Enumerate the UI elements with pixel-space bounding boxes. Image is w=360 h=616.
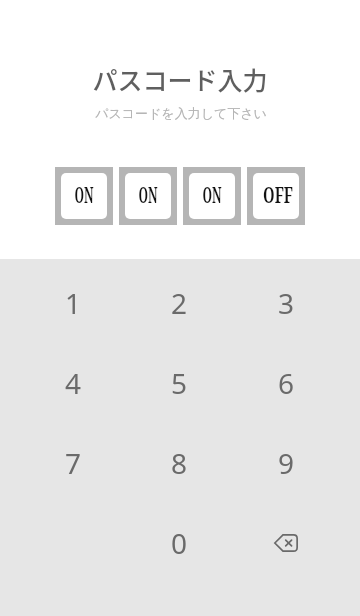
- button[interactable]: ON: [61, 173, 107, 219]
- staticText: 8: [171, 444, 188, 482]
- staticText: 9: [278, 444, 295, 482]
- staticText: 0: [171, 524, 188, 562]
- button[interactable]: 9: [233, 423, 340, 503]
- button[interactable]: 5: [126, 343, 233, 423]
- staticText: 7: [65, 444, 82, 482]
- button[interactable]: 8: [126, 423, 233, 503]
- staticText: 4: [65, 364, 82, 402]
- staticText: OFF: [255, 179, 299, 209]
- staticText: 2: [171, 284, 188, 322]
- staticText: ON: [129, 179, 167, 209]
- staticText: パスコード入力: [0, 61, 360, 97]
- staticText: 3: [278, 284, 295, 322]
- button[interactable]: 4: [20, 343, 126, 423]
- other: Backspace: [274, 534, 298, 552]
- staticText: ON: [193, 179, 231, 209]
- staticText: 1: [65, 284, 82, 322]
- button[interactable]: 1: [20, 262, 126, 343]
- button[interactable]: ON: [125, 173, 171, 219]
- button[interactable]: Backspace: [233, 503, 340, 583]
- button[interactable]: 7: [20, 423, 126, 503]
- staticText: 6: [278, 364, 295, 402]
- button[interactable]: 6: [233, 343, 340, 423]
- button[interactable]: 3: [233, 262, 340, 343]
- button[interactable]: 0: [126, 503, 233, 583]
- button[interactable]: OFF: [253, 173, 299, 219]
- staticText: ON: [65, 179, 103, 209]
- staticText: パスコードを入力して下さい: [1, 105, 360, 121]
- staticText: 5: [171, 364, 188, 402]
- button[interactable]: ON: [189, 173, 235, 219]
- button[interactable]: 2: [126, 262, 233, 343]
